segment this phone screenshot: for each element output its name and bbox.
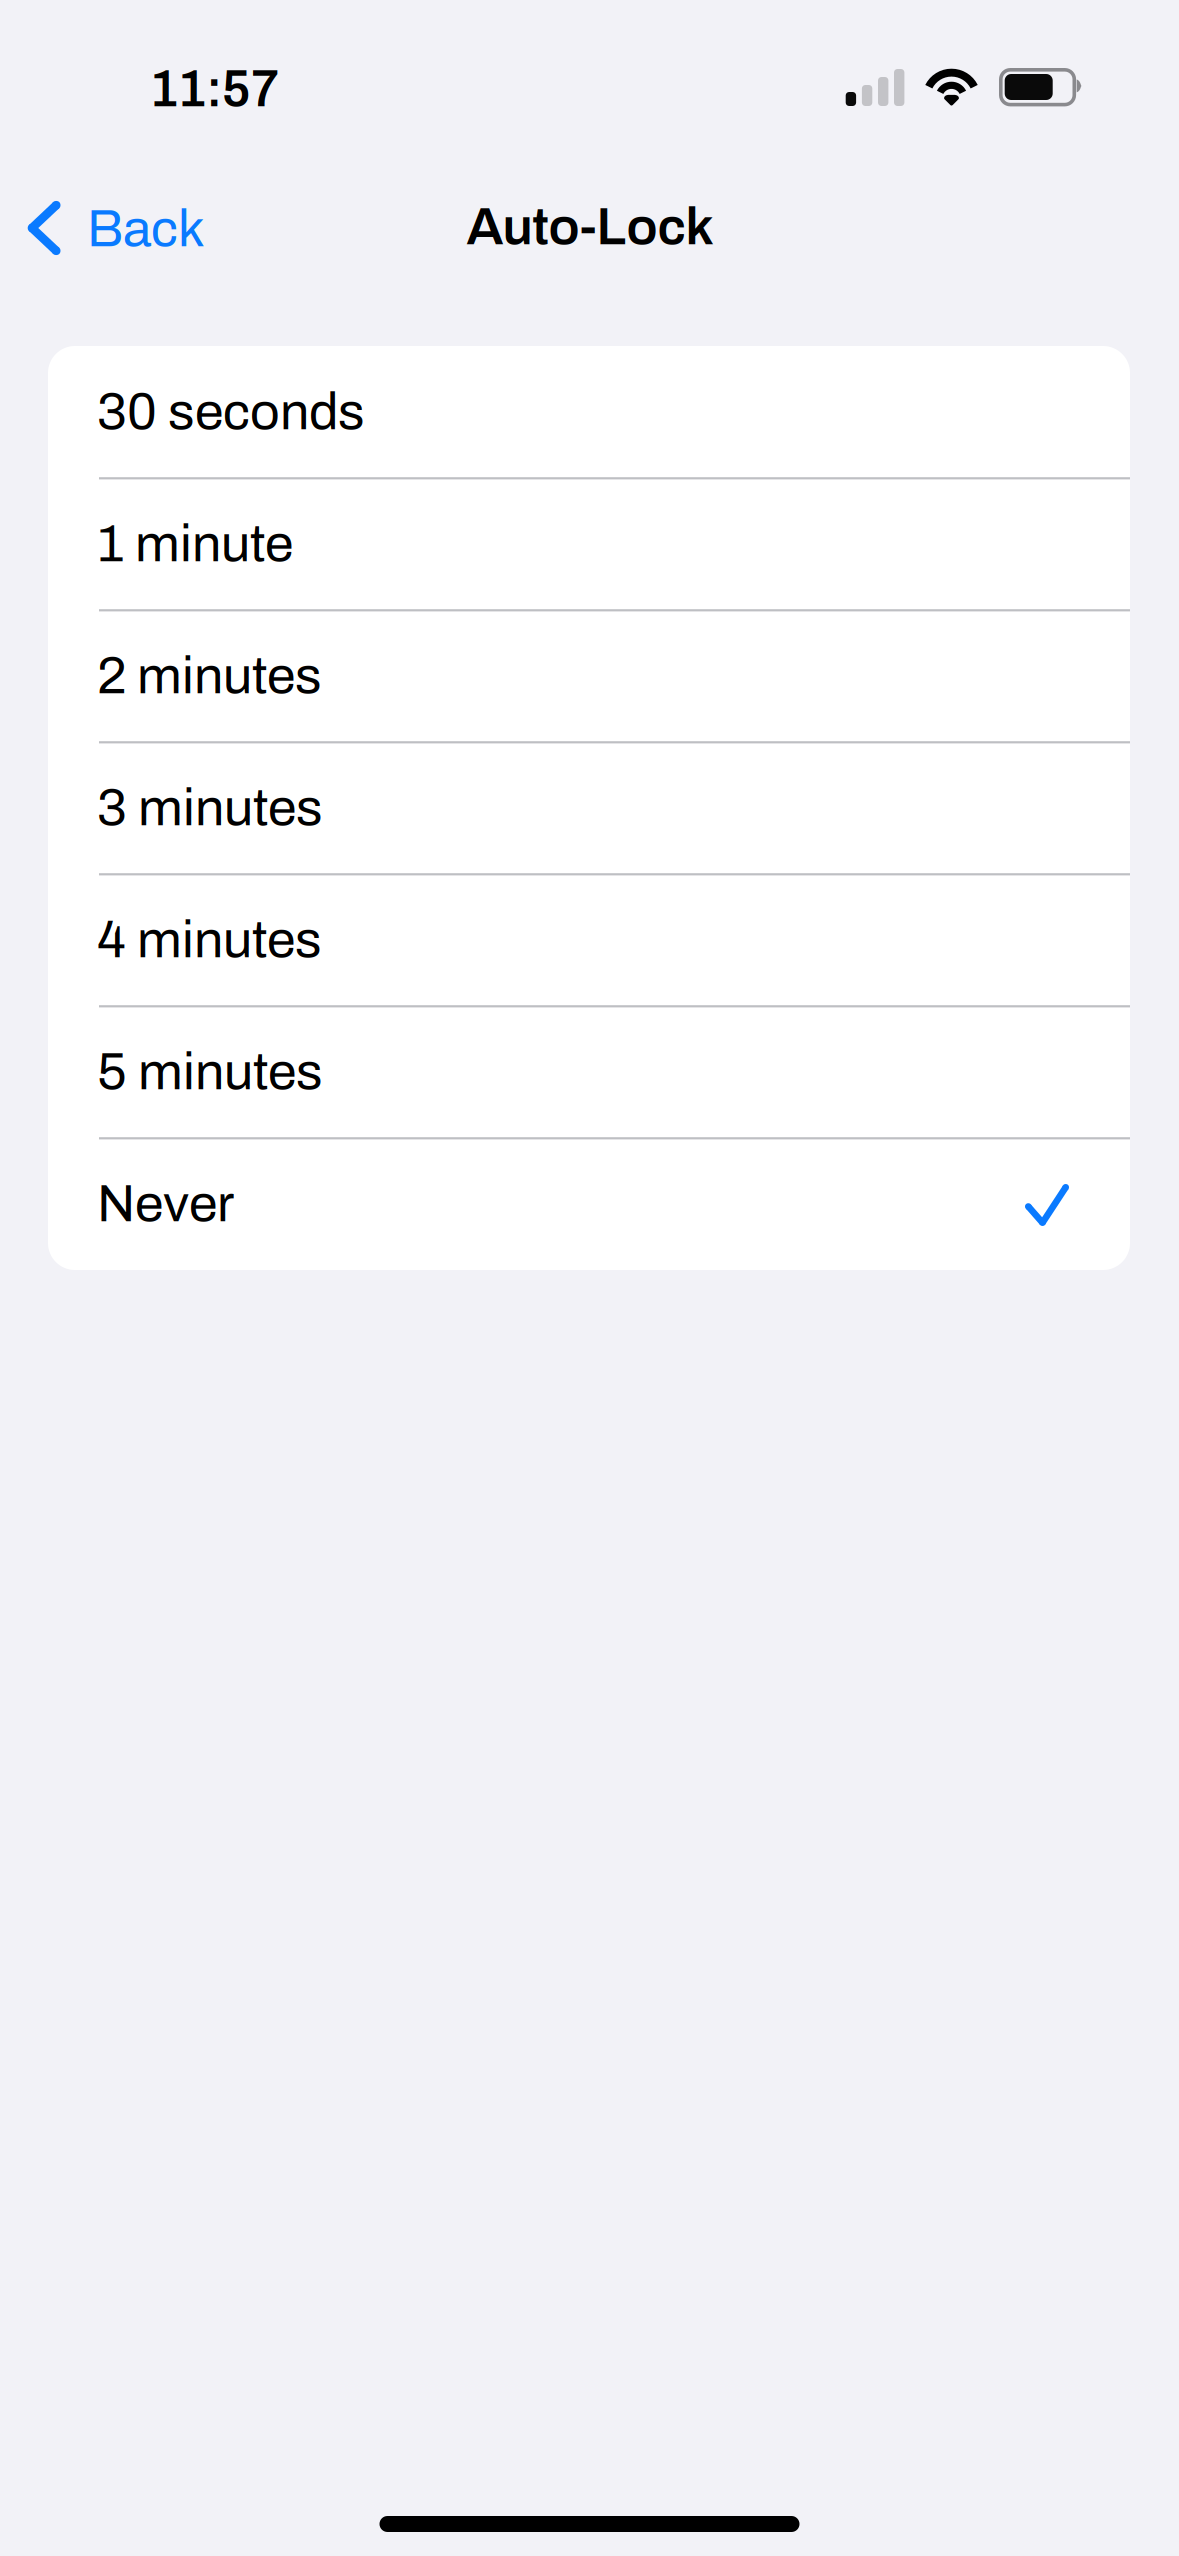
- staticText: Never: [97, 1176, 234, 1232]
- button[interactable]: 3 minutes: [48, 742, 1130, 874]
- staticText: 5 minutes: [97, 1044, 323, 1100]
- staticText: 2 minutes: [97, 648, 322, 704]
- button[interactable]: 30 seconds: [48, 346, 1130, 478]
- button[interactable]: 5 minutes: [48, 1006, 1130, 1138]
- button[interactable]: Never: [48, 1138, 1130, 1270]
- staticText: Back: [87, 201, 205, 257]
- staticText: 30 seconds: [97, 384, 365, 440]
- button[interactable]: Back: [0, 176, 290, 280]
- staticText: 3 minutes: [97, 780, 323, 836]
- button[interactable]: 1 minute: [48, 478, 1130, 610]
- staticText: Auto-Lock: [466, 199, 713, 255]
- staticText: 1 minute: [97, 516, 293, 572]
- button[interactable]: 4 minutes: [48, 874, 1130, 1006]
- staticText: 4 minutes: [97, 912, 322, 968]
- staticText: 11:57: [150, 61, 279, 117]
- button[interactable]: 2 minutes: [48, 610, 1130, 742]
